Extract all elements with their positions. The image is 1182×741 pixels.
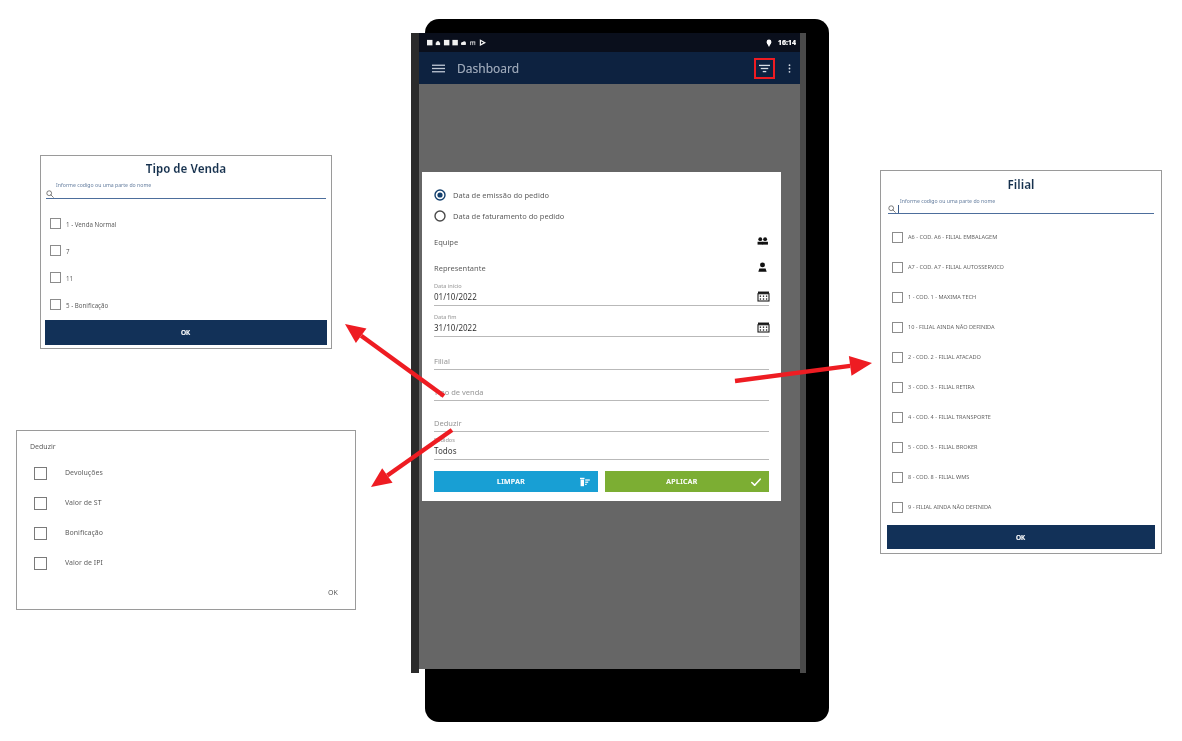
staticText: 10 - FILIAL AINDA NÃO DEFINIDA <box>908 323 995 331</box>
staticText: Tipo de Venda <box>40 161 332 177</box>
staticText: 9 - FILIAL AINDA NÃO DEFINIDA <box>908 503 992 511</box>
staticText: Dashboard <box>457 60 520 76</box>
button[interactable]: Valor de IPI <box>30 548 342 578</box>
staticText: 1 - Venda Normal <box>66 220 117 228</box>
button[interactable]: OK <box>887 525 1155 549</box>
button[interactable]: Representante <box>434 257 769 278</box>
staticText: Data fim <box>434 313 457 321</box>
staticText: APLICAR <box>613 477 751 487</box>
staticText: Valor de ST <box>65 498 102 508</box>
button[interactable]: Pedidos <box>434 436 769 460</box>
staticText: OK <box>181 328 191 337</box>
button[interactable]: Filial <box>434 349 769 370</box>
button[interactable]: More options <box>779 58 799 78</box>
staticText: A7 - COD. A7 - FILIAL AUTOSSERVICO <box>908 263 1004 271</box>
staticText: Equipe <box>434 237 756 247</box>
staticText: Valor de IPI <box>65 558 103 568</box>
staticText: Pedidos <box>434 436 455 444</box>
button[interactable]: Equipe <box>434 231 769 252</box>
staticText: 5 - COD. 5 - FILIAL BROKER <box>908 443 978 451</box>
button[interactable]: APLICAR <box>605 471 769 492</box>
button[interactable]: 5 - Bonificação <box>40 291 332 318</box>
staticText: 31/10/2022 <box>434 322 477 333</box>
button[interactable]: 3 - COD. 3 - FILIAL RETIRA <box>880 372 1162 402</box>
button[interactable]: Tipo de venda <box>434 380 769 401</box>
staticText: 11 <box>66 274 74 282</box>
button[interactable]: 8 - COD. 8 - FILIAL WMS <box>880 462 1162 492</box>
button[interactable]: Devoluções <box>30 458 342 488</box>
button[interactable]: Bonificação <box>30 518 342 548</box>
button[interactable]: Data início <box>434 282 769 306</box>
staticText: A6 - COD. A6 - FILIAL EMBALAGEM <box>908 233 998 241</box>
staticText: OK <box>1016 533 1026 542</box>
button[interactable]: A6 - COD. A6 - FILIAL EMBALAGEM <box>880 222 1162 252</box>
staticText: Filial <box>434 356 450 366</box>
button[interactable]: 9 - FILIAL AINDA NÃO DEFINIDA <box>880 492 1162 522</box>
staticText: Bonificação <box>65 528 103 538</box>
button[interactable]: 1 - COD. 1 - MAXIMA TECH <box>880 282 1162 312</box>
staticText: Deduzir <box>434 418 462 428</box>
button[interactable]: OK <box>324 586 342 600</box>
button[interactable]: Data fim <box>434 313 769 337</box>
button[interactable]: 10 - FILIAL AINDA NÃO DEFINIDA <box>880 312 1162 342</box>
button[interactable]: Deduzir <box>434 411 769 432</box>
staticText: 2 - COD. 2 - FILIAL ATACADO <box>908 353 981 361</box>
button[interactable]: Valor de ST <box>30 488 342 518</box>
staticText: 4 - COD. 4 - FILIAL TRANSPORTE <box>908 413 991 421</box>
button[interactable]: Open navigation menu <box>427 57 449 79</box>
staticText: Tipo de venda <box>434 387 484 397</box>
button[interactable]: LIMPAR <box>434 471 598 492</box>
staticText: Deduzir <box>30 442 56 452</box>
button[interactable]: A7 - COD. A7 - FILIAL AUTOSSERVICO <box>880 252 1162 282</box>
staticText: Data início <box>434 282 462 290</box>
staticText: 7 <box>66 247 70 255</box>
button[interactable]: 4 - COD. 4 - FILIAL TRANSPORTE <box>880 402 1162 432</box>
button[interactable]: Filter <box>754 58 775 79</box>
button[interactable]: 5 - COD. 5 - FILIAL BROKER <box>880 432 1162 462</box>
staticText: Devoluções <box>65 468 103 478</box>
staticText: 01/10/2022 <box>434 291 477 302</box>
staticText: 5 - Bonificação <box>66 301 109 309</box>
staticText: Data de emissão do pedido <box>453 190 550 200</box>
staticText: Todos <box>434 445 457 456</box>
staticText: Informe codigo ou uma parte do nome <box>900 197 996 204</box>
staticText: 16:14 <box>778 38 796 48</box>
staticText: Data de faturamento do pedido <box>453 211 565 221</box>
staticText: Informe codigo ou uma parte do nome <box>56 181 152 188</box>
button[interactable]: OK <box>45 320 327 345</box>
staticText: 3 - COD. 3 - FILIAL RETIRA <box>908 383 975 391</box>
button[interactable]: Data de emissão do pedido <box>434 184 769 205</box>
staticText: Representante <box>434 263 756 273</box>
staticText: OK <box>328 588 338 598</box>
staticText: Filial <box>880 177 1162 193</box>
staticText: 8 - COD. 8 - FILIAL WMS <box>908 473 970 481</box>
button[interactable]: 1 - Venda Normal <box>40 210 332 237</box>
button[interactable]: 2 - COD. 2 - FILIAL ATACADO <box>880 342 1162 372</box>
button[interactable]: 11 <box>40 264 332 291</box>
button[interactable]: 7 <box>40 237 332 264</box>
staticText: LIMPAR <box>442 477 580 487</box>
staticText: 1 - COD. 1 - MAXIMA TECH <box>908 293 977 301</box>
button[interactable]: Data de faturamento do pedido <box>434 205 769 226</box>
